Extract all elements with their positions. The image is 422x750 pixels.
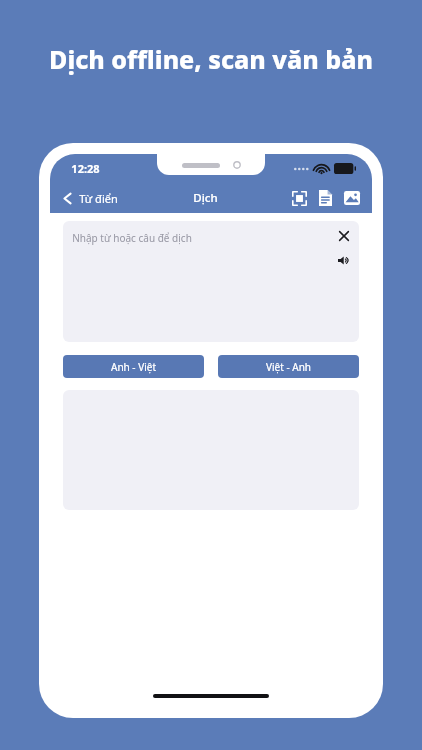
staticText: Anh - Việt bbox=[111, 360, 156, 374]
staticText: Dịch bbox=[193, 190, 218, 206]
button[interactable]: Từ điển bbox=[50, 187, 126, 210]
button[interactable]: Clear bbox=[336, 228, 352, 244]
button[interactable]: Document bbox=[313, 184, 338, 212]
button[interactable]: Nhập từ hoặc câu để dịch bbox=[63, 221, 359, 342]
staticText: Việt - Anh bbox=[266, 360, 311, 374]
button[interactable]: Việt - Anh bbox=[218, 355, 359, 378]
button[interactable]: Image bbox=[338, 185, 366, 211]
staticText: Nhập từ hoặc câu để dịch bbox=[72, 231, 192, 245]
button[interactable]: Speak bbox=[335, 253, 352, 268]
staticText: Dịch offline, scan văn bản bbox=[49, 42, 373, 76]
button[interactable]: Scan text bbox=[286, 185, 313, 212]
staticText: 12:28 bbox=[71, 161, 100, 176]
staticText: Từ điển bbox=[79, 191, 118, 206]
button[interactable]: Anh - Việt bbox=[63, 355, 204, 378]
